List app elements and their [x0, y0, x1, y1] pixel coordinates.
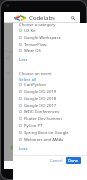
staticText: Webinars and AMAs — [24, 137, 64, 143]
button[interactable]: Done — [66, 157, 81, 164]
button[interactable]: Cancel — [49, 156, 64, 165]
staticText: Google I/O 2017 — [24, 103, 57, 109]
staticText: Google I/O 2019 — [24, 89, 57, 95]
button[interactable]: UX Kit — [19, 27, 77, 34]
button[interactable]: CartPython — [19, 81, 77, 88]
staticText: Spring Boot on Google — [24, 130, 69, 136]
staticText: Google Workspace — [24, 35, 61, 41]
staticText: WDC Conferences — [24, 109, 60, 115]
staticText: Codelabs — [29, 14, 55, 22]
staticText: Choose — [5, 50, 14, 54]
button[interactable]: Select all — [19, 76, 37, 83]
button[interactable]: PyCon PT — [19, 122, 77, 129]
staticText: Google I/O 2018 — [24, 96, 57, 102]
button[interactable]: Less — [19, 56, 28, 63]
staticText: Choose an event — [19, 71, 52, 77]
staticText: PyCon PT — [24, 123, 43, 129]
button[interactable]: Search — [69, 14, 76, 21]
button[interactable]: Choose an event — [19, 70, 52, 77]
staticText: UX Kit — [24, 28, 36, 34]
staticText: Wear OS — [24, 48, 41, 54]
staticText: Choose a category — [19, 22, 56, 28]
button[interactable]: TensorFlow — [19, 41, 77, 48]
button[interactable]: Google I/O 2017 — [19, 102, 77, 109]
button[interactable]: Wear OS — [19, 47, 77, 54]
button[interactable]: Less — [19, 145, 28, 152]
staticText: Select all — [19, 77, 37, 83]
button[interactable]: WDC Conferences — [19, 108, 77, 115]
button[interactable]: Webinars and AMAs — [19, 136, 77, 143]
staticText: Cat — [5, 71, 10, 75]
button[interactable]: Spring Boot on Google — [19, 129, 77, 136]
staticText: Cancel — [50, 158, 63, 163]
button[interactable]: Flutter Dev Summit — [19, 115, 77, 122]
button[interactable]: Google I/O 2018 — [19, 95, 77, 102]
staticText: CartPython — [24, 82, 47, 88]
button[interactable]: Google I/O 2019 — [19, 88, 77, 95]
button[interactable]: Google Workspace — [19, 34, 77, 41]
staticText: Done — [68, 158, 79, 163]
staticText: TensorFlow — [24, 42, 47, 48]
staticText: All — [6, 56, 10, 60]
staticText: Less — [19, 146, 28, 152]
button[interactable]: Choose a category — [19, 21, 56, 28]
staticText: Flutter Dev Summit — [24, 116, 62, 122]
staticText: Less — [19, 57, 28, 63]
